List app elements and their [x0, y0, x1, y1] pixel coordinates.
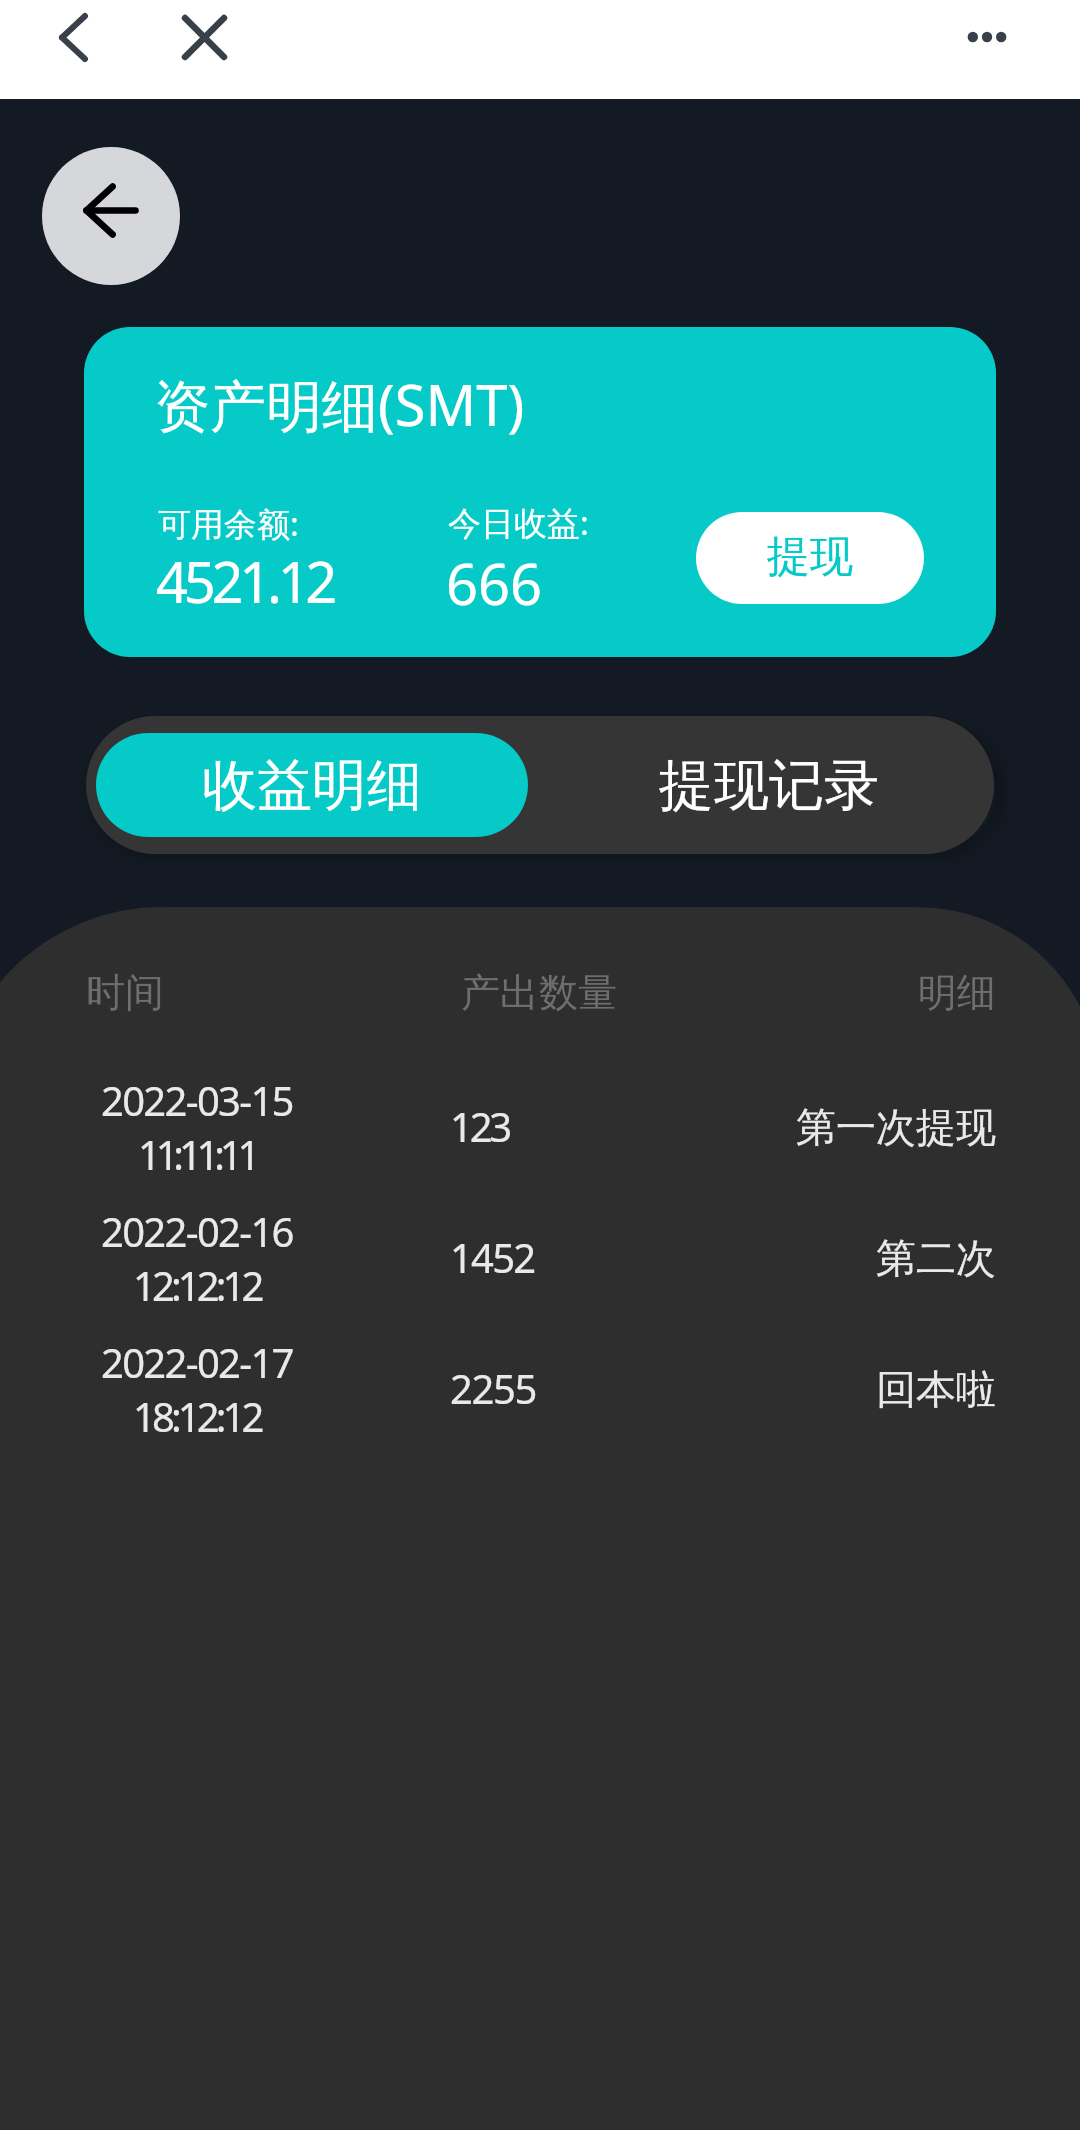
staticText: 2022-02-16 [101, 1204, 293, 1258]
staticText: 12:12:12 [133, 1258, 261, 1312]
staticText: 4521.12 [156, 543, 334, 619]
staticText: 第一次提现 [696, 1102, 996, 1152]
staticText: 123 [450, 1099, 510, 1153]
staticText: 收益明细 [202, 751, 422, 820]
button[interactable]: 提现 [696, 512, 924, 604]
staticText: 资产明细(SMT) [154, 366, 525, 442]
button[interactable]: 收益明细 [96, 733, 528, 837]
staticText: 时间 [86, 968, 164, 1017]
staticText: 提现记录 [659, 751, 879, 820]
staticText: 产出数量 [461, 968, 617, 1017]
staticText: 2022-03-15 [101, 1073, 293, 1127]
button[interactable]: Close [168, 0, 240, 74]
button[interactable]: 2022-03-15 [0, 1067, 1080, 1198]
staticText: 2255 [450, 1361, 536, 1415]
staticText: 提现 [767, 530, 853, 584]
staticText: 第二次 [696, 1233, 996, 1283]
staticText: 回本啦 [696, 1364, 996, 1414]
staticText: 18:12:12 [133, 1389, 261, 1443]
button[interactable]: 2022-02-17 [0, 1329, 1080, 1460]
staticText: 可用余额: [158, 501, 299, 546]
staticText: 2022-02-17 [101, 1335, 293, 1389]
button[interactable]: Back [37, 0, 109, 74]
button[interactable]: 2022-02-16 [0, 1198, 1080, 1329]
staticText: 11:11:11 [138, 1127, 256, 1181]
staticText: 1452 [450, 1230, 535, 1284]
button[interactable]: 提现记录 [546, 733, 992, 837]
button[interactable]: Back [42, 147, 180, 285]
staticText: 明细 [834, 968, 996, 1017]
staticText: 今日收益: [448, 500, 589, 545]
staticText: 666 [446, 545, 543, 621]
button[interactable]: More options [947, 0, 1027, 73]
